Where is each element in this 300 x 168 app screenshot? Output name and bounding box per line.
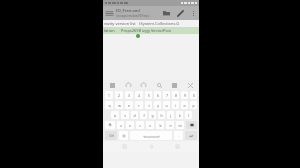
- button[interactable]: Settings: [119, 131, 128, 140]
- staticText: z: [120, 123, 122, 128]
- button[interactable]: 2: [115, 91, 123, 99]
- button[interactable]: 4: [135, 91, 143, 99]
- staticText: 5: [148, 93, 150, 98]
- button[interactable]: 7: [163, 91, 170, 99]
- staticText: 3: [128, 93, 130, 98]
- button[interactable]: Recents: [119, 141, 130, 152]
- button[interactable]: b: [156, 121, 164, 129]
- button[interactable]: y: [154, 101, 161, 109]
- button[interactable]: Redo: [137, 80, 149, 90]
- button[interactable]: Enter: [185, 131, 197, 140]
- button[interactable]: 6: [154, 91, 161, 99]
- button[interactable]: u: [163, 101, 170, 109]
- staticText: b: [159, 123, 162, 128]
- button[interactable]: d: [131, 111, 138, 119]
- staticText: n: [169, 123, 172, 128]
- staticText: l: [188, 113, 189, 118]
- button[interactable]: Ctrl: [105, 131, 117, 140]
- staticText: lation: [104, 28, 115, 33]
- staticText: q: [108, 103, 111, 108]
- staticText: /storage/emulated/0/Smpl...: [116, 14, 151, 18]
- button[interactable]: IO_Free.xml: [115, 8, 159, 18]
- staticText: ravity version list: [104, 21, 136, 26]
- staticText: e: [128, 103, 130, 108]
- staticText: u: [165, 103, 168, 108]
- button[interactable]: Home: [146, 141, 157, 152]
- button[interactable]: lation: [103, 27, 199, 34]
- button[interactable]: z: [117, 121, 124, 129]
- staticText: 4: [138, 93, 140, 98]
- staticText: k: [179, 113, 181, 118]
- button[interactable]: h: [158, 111, 165, 119]
- button[interactable]: Clipboard: [106, 80, 118, 90]
- button[interactable]: i: [172, 101, 179, 109]
- staticText: 7: [166, 93, 168, 98]
- button[interactable]: 3: [125, 91, 133, 99]
- staticText: 1: [108, 93, 110, 98]
- staticText: d: [133, 113, 136, 118]
- button[interactable]: l: [185, 111, 192, 119]
- button[interactable]: Backspace: [186, 121, 197, 129]
- button[interactable]: m: [176, 121, 184, 129]
- button[interactable]: p: [190, 101, 197, 109]
- staticText: v: [149, 123, 151, 128]
- button[interactable]: Save: [168, 80, 180, 90]
- button[interactable]: 5: [145, 91, 152, 99]
- button[interactable]: Open file: [159, 6, 173, 20]
- staticText: IO_Free.xml: [116, 8, 140, 14]
- button[interactable]: t: [145, 101, 152, 109]
- button[interactable]: v: [146, 121, 154, 129]
- staticText: p: [192, 103, 195, 108]
- button[interactable]: Edit: [173, 6, 187, 20]
- button[interactable]: 9: [181, 91, 188, 99]
- button[interactable]: s: [121, 111, 129, 119]
- staticText: h: [160, 113, 163, 118]
- button[interactable]: e: [125, 101, 133, 109]
- staticText: f: [143, 113, 145, 118]
- button[interactable]: k: [176, 111, 183, 119]
- button[interactable]: x: [126, 121, 134, 129]
- staticText: a: [114, 113, 116, 118]
- staticText: 8: [175, 93, 177, 98]
- button[interactable]: More options: [187, 7, 199, 19]
- staticText: 2: [118, 93, 120, 98]
- button[interactable]: 8: [172, 91, 179, 99]
- button[interactable]: r: [135, 101, 143, 109]
- staticText: m: [178, 123, 182, 128]
- button[interactable]: c: [136, 121, 144, 129]
- staticText: tSystem.Collections.G: [139, 21, 180, 26]
- button[interactable]: j: [167, 111, 174, 119]
- button[interactable]: Back: [172, 141, 183, 152]
- button[interactable]: w: [115, 101, 123, 109]
- button[interactable]: Close: [184, 80, 196, 90]
- staticText: t: [148, 103, 150, 108]
- staticText: 0: [193, 93, 195, 98]
- staticText: x: [129, 123, 131, 128]
- button[interactable]: Shift: [105, 121, 115, 129]
- button[interactable]: 1: [105, 91, 113, 99]
- button[interactable]: Open navigation drawer: [103, 7, 115, 19]
- staticText: o: [183, 103, 186, 108]
- button[interactable]: a: [111, 111, 119, 119]
- button[interactable]: q: [105, 101, 113, 109]
- staticText: w: [118, 103, 121, 108]
- button[interactable]: Space: [130, 131, 172, 140]
- staticText: i: [175, 103, 176, 108]
- staticText: Ctrl: [109, 134, 114, 138]
- button[interactable]: Search: [153, 80, 165, 90]
- button[interactable]: Undo: [122, 80, 134, 90]
- staticText: .: [178, 134, 179, 138]
- staticText: s: [124, 113, 126, 118]
- staticText: Props2698 izyjy VectorPosi: [121, 28, 171, 33]
- staticText: 6: [157, 93, 159, 98]
- button[interactable]: f: [140, 111, 147, 119]
- staticText: g: [151, 113, 154, 118]
- staticText: r: [138, 103, 140, 108]
- button[interactable]: o: [181, 101, 188, 109]
- staticText: j: [170, 113, 171, 118]
- staticText: 9: [184, 93, 186, 98]
- button[interactable]: 0: [190, 91, 197, 99]
- button[interactable]: g: [149, 111, 156, 119]
- button[interactable]: n: [166, 121, 174, 129]
